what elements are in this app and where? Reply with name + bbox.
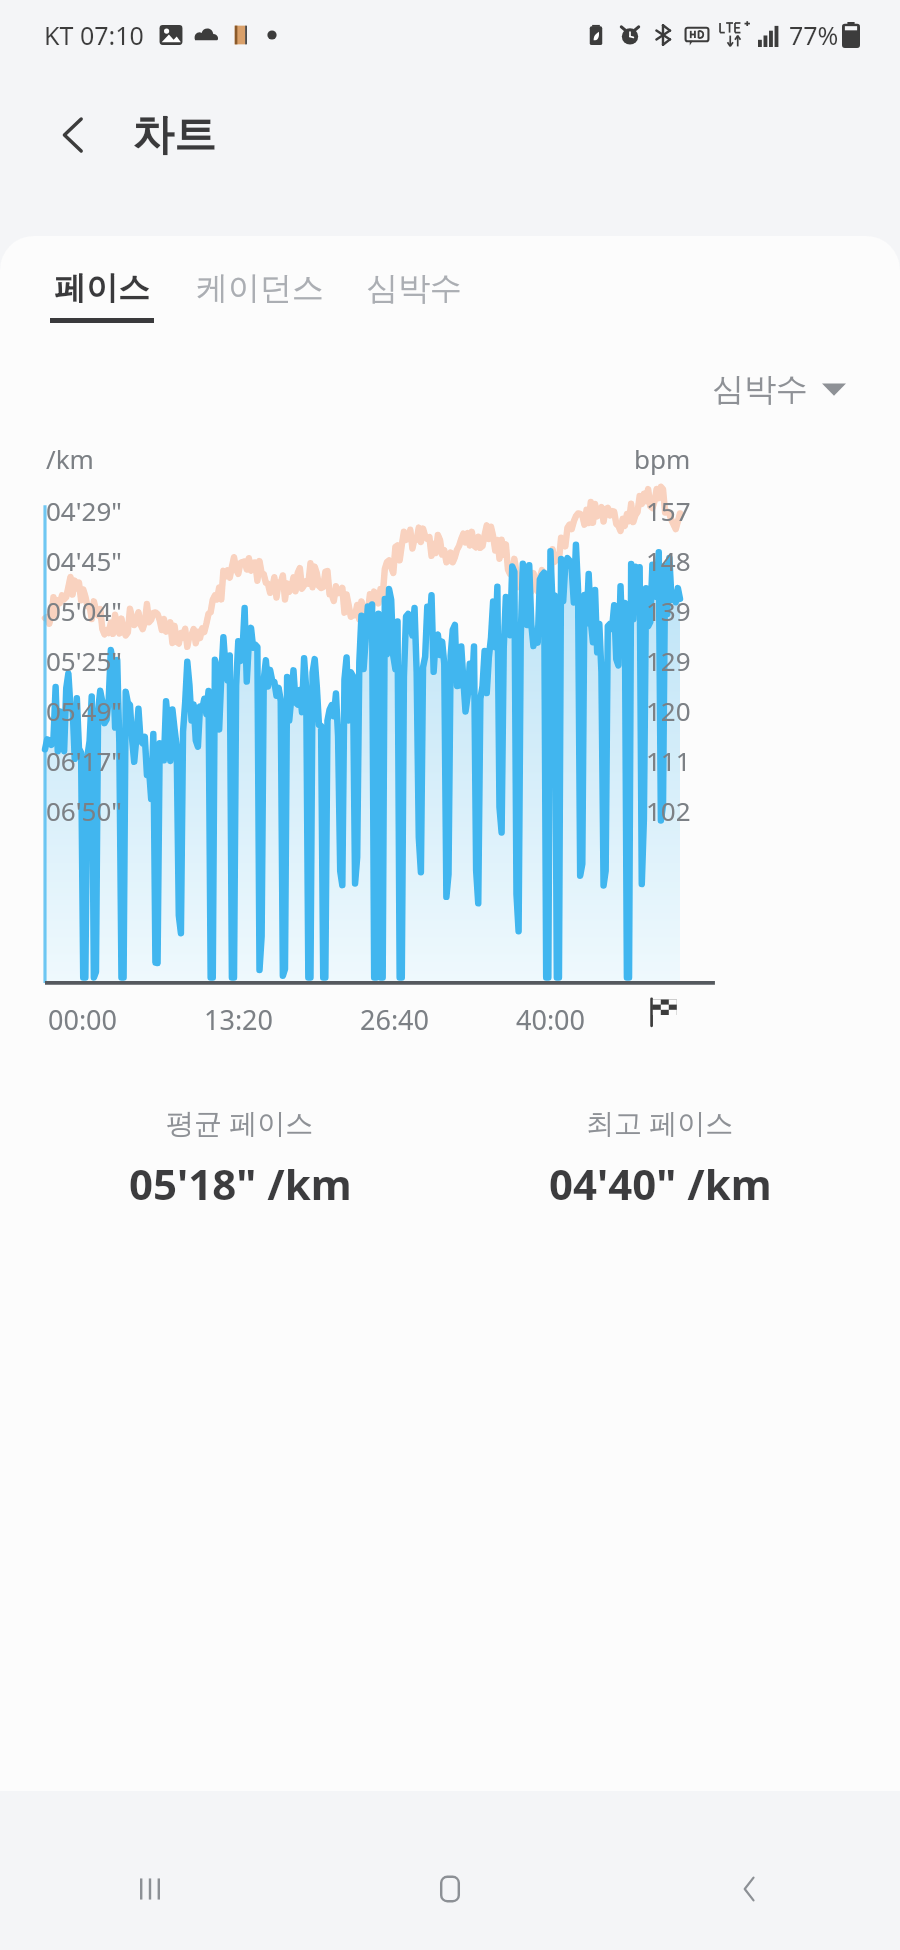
button[interactable]: 평균 페이스 <box>30 1097 450 1218</box>
button[interactable]: Back <box>38 99 110 171</box>
staticText: 00:00 <box>48 1001 118 1038</box>
staticText: 05'25" <box>46 643 122 678</box>
staticText: 케이던스 <box>196 268 324 308</box>
staticText: 심박수 <box>366 268 462 308</box>
button[interactable]: 심박수 <box>362 268 466 323</box>
button[interactable]: 최고 페이스 <box>450 1097 870 1218</box>
staticText: 심박수 <box>712 369 808 409</box>
button[interactable]: Home <box>300 1827 600 1950</box>
staticText: 148 <box>646 543 691 578</box>
staticText: 40:00 <box>516 1001 586 1038</box>
staticText: 111 <box>646 743 691 778</box>
staticText: 102 <box>646 793 691 828</box>
staticText: 139 <box>646 593 691 628</box>
button[interactable]: 케이던스 <box>192 268 328 323</box>
staticText: 26:40 <box>360 1001 430 1038</box>
staticText: 차트 <box>132 109 216 162</box>
staticText: 04'29" <box>46 493 122 528</box>
staticText: 13:20 <box>204 1001 274 1038</box>
staticText: 평균 페이스 <box>166 1103 314 1141</box>
staticText: 06'50" <box>46 793 122 828</box>
staticText: 최고 페이스 <box>586 1103 734 1141</box>
staticText: 05'49" <box>46 693 122 728</box>
staticText: 05'18" /km <box>129 1155 352 1212</box>
staticText: 77% <box>789 18 839 52</box>
button[interactable]: Back <box>600 1827 900 1950</box>
staticText: 06'17" <box>46 743 122 778</box>
button[interactable]: 페이스 <box>46 268 158 323</box>
staticText: /km <box>46 441 94 476</box>
staticText: 129 <box>646 643 691 678</box>
staticText: 157 <box>646 493 691 528</box>
staticText: 04'45" <box>46 543 122 578</box>
staticText: 페이스 <box>54 268 150 308</box>
button[interactable]: Recent apps <box>0 1827 300 1950</box>
staticText: 120 <box>646 693 691 728</box>
staticText: KT 07:10 <box>44 18 144 52</box>
staticText: bpm <box>634 441 691 476</box>
staticText: 05'04" <box>46 593 122 628</box>
staticText: 04'40" /km <box>549 1155 772 1212</box>
button[interactable]: 심박수 <box>706 363 852 415</box>
